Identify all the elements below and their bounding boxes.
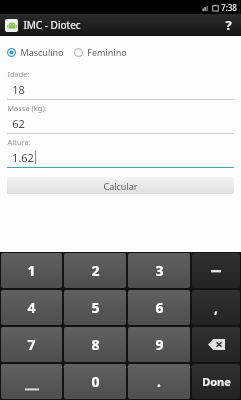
button[interactable]: 6 bbox=[128, 290, 190, 325]
button[interactable]: 3 bbox=[128, 253, 190, 288]
button[interactable]: 4 bbox=[1, 290, 62, 325]
staticText: 0 bbox=[91, 372, 100, 391]
button[interactable]: 2 bbox=[64, 253, 126, 288]
staticText: 18 bbox=[12, 82, 25, 97]
button[interactable]: Apagar bbox=[192, 327, 240, 362]
button[interactable]: Tab bbox=[1, 364, 62, 399]
staticText: Calcular bbox=[103, 180, 138, 192]
button[interactable]: Feminino bbox=[74, 44, 127, 60]
staticText: 62 bbox=[12, 116, 25, 131]
staticText: 6 bbox=[155, 298, 164, 317]
staticText: 1 bbox=[27, 261, 36, 280]
staticText: Idade: bbox=[7, 69, 30, 79]
staticText: Done bbox=[202, 374, 231, 389]
staticText: 7 bbox=[27, 335, 36, 354]
staticText: 1.62 bbox=[12, 150, 34, 165]
button[interactable]: 0 bbox=[64, 364, 126, 399]
staticText: 3 bbox=[155, 261, 164, 280]
staticText: 9 bbox=[155, 335, 164, 354]
button[interactable]: 1 bbox=[1, 253, 62, 288]
button[interactable]: Altura: bbox=[0, 134, 241, 168]
button[interactable]: Virgula bbox=[192, 290, 240, 325]
button[interactable]: Menos bbox=[192, 253, 240, 288]
staticText: Feminino bbox=[87, 46, 127, 58]
staticText: . bbox=[157, 372, 161, 391]
staticText: 4 bbox=[27, 298, 36, 317]
button[interactable]: Idade: bbox=[0, 66, 241, 100]
button[interactable]: . bbox=[128, 364, 190, 399]
button[interactable]: 5 bbox=[64, 290, 126, 325]
button[interactable]: 9 bbox=[128, 327, 190, 362]
staticText: 7:38 bbox=[221, 2, 237, 13]
button[interactable]: Done bbox=[192, 364, 240, 399]
button[interactable]: Ajuda bbox=[215, 14, 241, 36]
button[interactable]: Masculino bbox=[7, 44, 64, 60]
staticText: 2 bbox=[91, 261, 100, 280]
button[interactable]: Massa (kg): bbox=[0, 100, 241, 134]
staticText: , bbox=[214, 298, 218, 317]
staticText: 8 bbox=[91, 335, 100, 354]
staticText: Massa (kg): bbox=[7, 103, 47, 113]
button[interactable]: 7 bbox=[1, 327, 62, 362]
staticText: Altura: bbox=[7, 137, 31, 147]
staticText: ? bbox=[225, 16, 232, 34]
button[interactable]: 8 bbox=[64, 327, 126, 362]
staticText: 5 bbox=[91, 298, 100, 317]
staticText: IMC - Diotec bbox=[23, 18, 81, 32]
button[interactable]: Calcular bbox=[7, 177, 234, 194]
staticText: Masculino bbox=[20, 46, 64, 58]
